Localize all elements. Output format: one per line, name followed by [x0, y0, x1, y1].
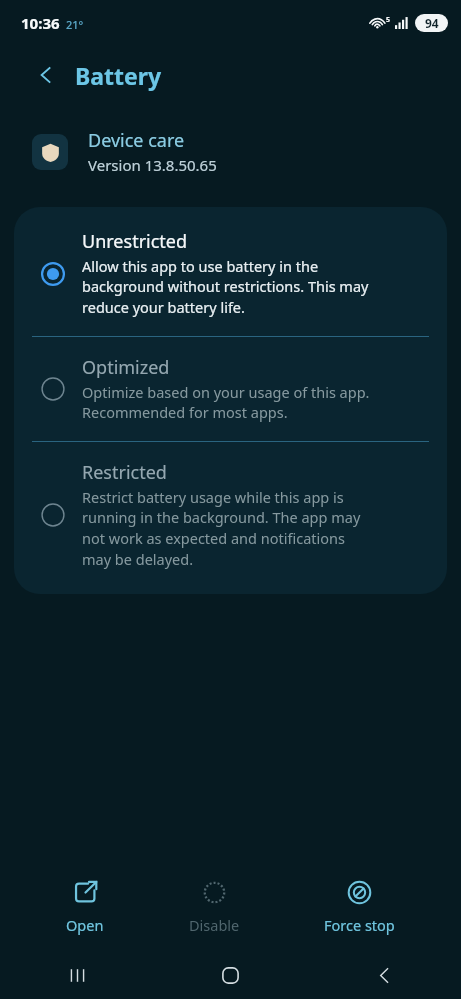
staticText: Restrict battery usage while this app is…	[82, 487, 361, 570]
staticText: 5	[386, 15, 391, 25]
staticText: Unrestricted	[82, 229, 188, 254]
staticText: 10:36	[21, 13, 60, 33]
button[interactable]: Unrestricted	[14, 207, 447, 336]
staticText: Device care	[88, 128, 185, 153]
staticText: 94	[425, 15, 439, 31]
staticText: Optimize based on your usage of this app…	[82, 382, 370, 423]
staticText: Force stop	[324, 915, 395, 935]
staticText: 21°	[66, 17, 84, 32]
staticText: Disable	[189, 915, 240, 935]
button[interactable]: Home	[206, 951, 254, 999]
button[interactable]: Optimized	[14, 337, 447, 441]
button[interactable]: Open	[48, 873, 122, 941]
button[interactable]: Disable	[171, 873, 258, 941]
button[interactable]: Force stop	[306, 873, 413, 941]
staticText: Version 13.8.50.65	[88, 155, 217, 175]
button[interactable]: Recent apps	[53, 951, 101, 999]
button[interactable]: Restricted	[14, 442, 447, 594]
staticText: Optimized	[82, 355, 170, 380]
button[interactable]: Back	[360, 951, 408, 999]
staticText: Restricted	[82, 460, 167, 485]
staticText: Open	[66, 915, 104, 935]
staticText: Allow this app to use battery in the bac…	[82, 256, 369, 318]
staticText: Battery	[75, 60, 162, 91]
button[interactable]: Back	[26, 55, 66, 95]
button[interactable]: Device care	[0, 124, 461, 179]
